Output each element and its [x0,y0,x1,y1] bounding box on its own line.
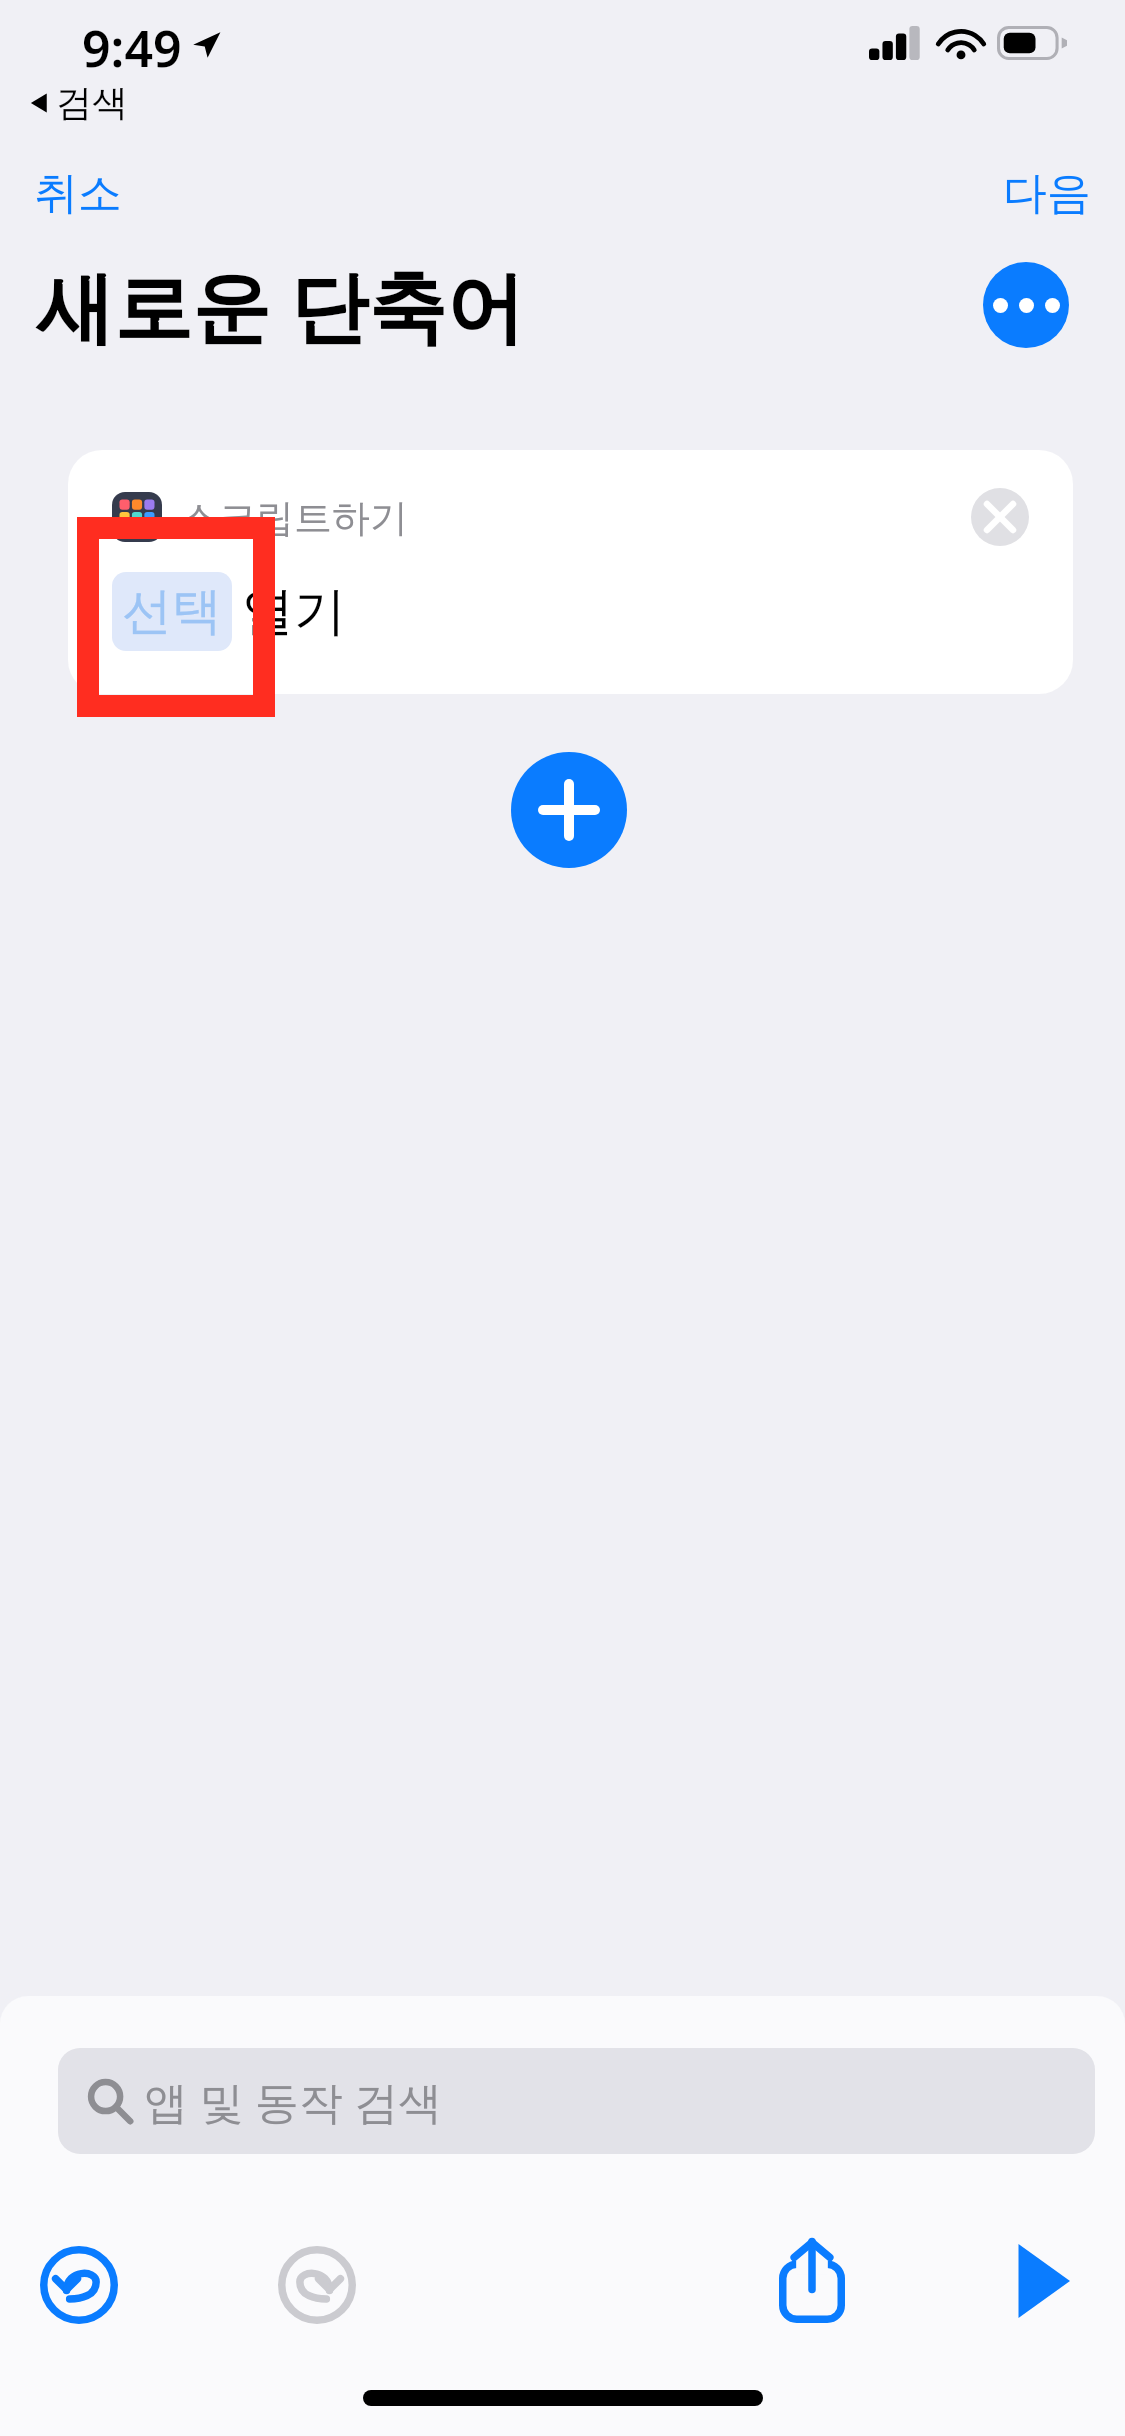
button[interactable]: Redo [262,2230,372,2340]
staticText: 취소 [34,166,122,221]
staticText: 앱 및 동작 검색 [144,2071,443,2131]
staticText: 검색 [56,80,128,125]
button[interactable]: More options [983,262,1069,348]
staticText: 선택 [122,580,222,643]
staticText: 새로운 단축어 [36,252,525,359]
button[interactable]: 앱 및 동작 검색 [58,2048,1095,2154]
button[interactable]: Run shortcut [987,2226,1097,2336]
staticText: 9:49 [82,14,182,82]
staticText: 열기 [242,579,346,645]
button[interactable]: Undo [24,2230,134,2340]
button[interactable]: 다음 [969,158,1125,229]
button[interactable]: Share [757,2226,867,2336]
button[interactable]: 검색 [26,78,130,127]
button[interactable]: Add action [511,752,627,868]
button[interactable]: 스크립트하기 [68,450,1073,694]
staticText: 스크립트하기 [180,494,408,542]
button[interactable]: 취소 [0,158,156,229]
button[interactable]: 선택 [112,572,232,651]
button[interactable]: Remove action [971,488,1029,546]
staticText: 다음 [1003,166,1091,221]
